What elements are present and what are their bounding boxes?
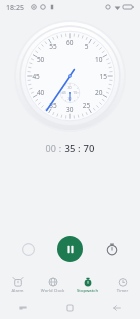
button[interactable] (0, 275, 35, 297)
button[interactable] (70, 275, 105, 297)
button[interactable] (105, 275, 140, 297)
button[interactable]: Pause (57, 236, 83, 262)
button[interactable]: Recents (0, 301, 46, 315)
button[interactable]: Reset (100, 237, 124, 261)
button[interactable]: Back (93, 301, 140, 315)
button[interactable] (35, 275, 70, 297)
button[interactable]: Home (46, 301, 93, 315)
button[interactable]: Lap (16, 237, 40, 261)
